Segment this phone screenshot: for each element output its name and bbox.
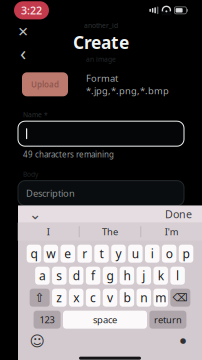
button[interactable]: Back [14,45,32,61]
staticText: k [158,268,164,284]
button[interactable]: v [103,289,117,307]
button[interactable]: Shift [30,289,50,307]
button[interactable]: p [179,245,193,263]
button[interactable]: u [128,245,143,263]
staticText: Description [26,187,75,199]
button[interactable]: q [27,245,41,263]
staticText: Create [73,31,129,54]
button[interactable]: m [153,289,168,307]
staticText: Body [23,170,38,179]
button[interactable]: x [69,289,83,307]
staticText: n [140,290,147,306]
staticText: ☺ [29,333,44,349]
button[interactable]: return [149,311,186,329]
button[interactable]: d [69,267,83,285]
button[interactable]: Description [18,181,184,206]
button[interactable]: c [86,289,100,307]
button[interactable]: z [52,289,67,307]
staticText: ⇧ [35,291,45,304]
staticText: y [115,246,121,262]
staticText: space [93,313,117,326]
staticText: s [56,268,62,284]
staticText: The [102,225,118,238]
button[interactable]: n [137,289,151,307]
button[interactable]: Done [163,207,194,221]
button[interactable]: Dictate [174,332,192,350]
staticText: m [155,290,166,306]
button[interactable]: f [86,267,100,285]
button[interactable] [18,121,184,146]
staticText: g [106,268,113,284]
staticText: Done [165,207,192,221]
staticText: b [123,290,130,306]
staticText: a [39,268,46,284]
button[interactable]: 123 [34,311,61,329]
staticText: 3:22 [21,3,42,17]
staticText: l [176,268,179,284]
staticText: w [46,246,55,262]
staticText: an image [86,55,116,64]
staticText: e [64,246,71,262]
staticText: another_id [84,21,118,30]
button[interactable]: Hide keyboard [26,207,44,221]
button[interactable]: The [79,223,140,241]
button[interactable]: b [120,289,134,307]
button[interactable]: i [145,245,159,263]
button[interactable]: g [103,267,117,285]
staticText: i [151,246,154,262]
button[interactable]: e [60,245,75,263]
staticText: o [166,246,173,262]
button[interactable]: s [52,267,66,285]
staticText: I'm [165,225,179,238]
staticText: 49 characters remaining [23,149,114,160]
staticText: ‹ [20,40,26,66]
button[interactable]: w [44,245,58,263]
staticText: ⌄ [29,206,41,222]
button[interactable]: o [162,245,176,263]
staticText: r [82,246,87,262]
staticText: z [56,290,62,306]
staticText: ⏺ [180,335,186,347]
button[interactable]: l [170,267,185,285]
button[interactable]: j [137,267,151,285]
staticText: Format *.jpg,*.png,*.bmp [86,72,169,97]
staticText: return [154,313,182,326]
button[interactable]: a [35,267,50,285]
staticText: ✕ [17,24,28,39]
staticText: j [142,268,145,284]
button[interactable]: Delete [170,289,190,307]
staticText: Upload [31,79,59,90]
staticText: v [107,290,113,306]
staticText: f [91,268,95,284]
staticText: d [73,268,80,284]
staticText: h [123,268,130,284]
staticText: ⌫ [173,292,188,304]
button[interactable]: I'm [141,223,202,241]
staticText: I [47,225,50,238]
staticText: u [132,246,139,262]
button[interactable]: y [111,245,126,263]
button[interactable]: Emoji [28,332,46,350]
staticText: x [73,290,79,306]
staticText: Name * [23,110,48,119]
button[interactable]: Close [14,24,32,40]
button[interactable]: h [120,267,134,285]
staticText: q [30,246,37,262]
button[interactable]: k [153,267,168,285]
staticText: 123 [40,313,55,326]
button[interactable]: I [18,223,79,241]
button[interactable]: space [63,311,147,329]
staticText: c [90,290,96,306]
button[interactable]: Upload image [10,67,80,101]
staticText: t [99,246,103,262]
staticText: p [183,246,190,262]
button[interactable]: r [77,245,92,263]
button[interactable]: t [94,245,109,263]
